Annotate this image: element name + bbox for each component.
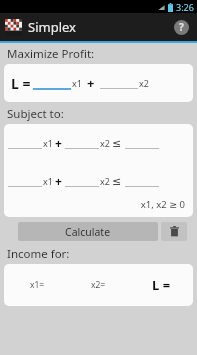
staticText: + xyxy=(87,74,95,92)
staticText: L = xyxy=(11,74,31,93)
staticText: x1, x2 ≥ 0 xyxy=(4,198,185,211)
staticText: Maximize Profit: xyxy=(7,46,95,62)
staticText: x2 xyxy=(139,77,149,89)
button[interactable]: Clear xyxy=(161,222,187,241)
staticText: Income for: xyxy=(7,246,70,262)
staticText: ≤ xyxy=(112,137,122,150)
staticText: x1 xyxy=(43,175,53,187)
staticText: x1= xyxy=(30,279,45,291)
button[interactable]: Calculate xyxy=(18,222,158,241)
staticText: 3:26 xyxy=(176,1,194,13)
staticText: L = xyxy=(152,276,171,294)
button[interactable]: Help xyxy=(170,16,192,38)
staticText: ≤ xyxy=(112,175,122,188)
staticText: x2 xyxy=(100,137,110,149)
staticText: ? xyxy=(179,20,184,34)
staticText: Subject to: xyxy=(7,106,64,122)
staticText: x2 xyxy=(100,175,110,187)
staticText: Calculate xyxy=(65,225,111,239)
staticText: + xyxy=(55,173,62,189)
staticText: Simplex xyxy=(28,18,76,36)
staticText: x1 xyxy=(43,137,53,149)
staticText: + xyxy=(55,135,62,151)
staticText: x1 xyxy=(72,77,82,89)
staticText: x2= xyxy=(91,279,106,291)
